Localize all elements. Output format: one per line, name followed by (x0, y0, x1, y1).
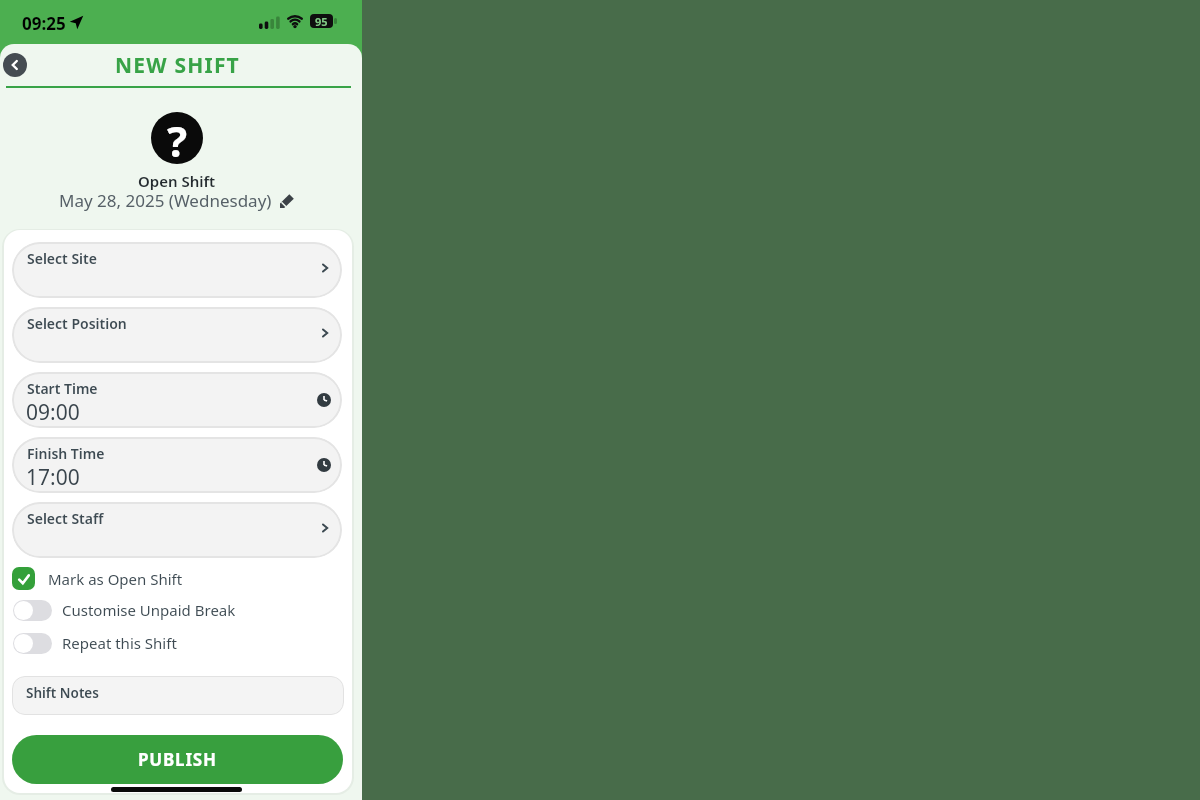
staticText: Select Staff (27, 509, 104, 528)
staticText: NEW SHIFT (115, 51, 240, 80)
staticText: Shift Notes (26, 684, 99, 702)
staticText: Mark as Open Shift (48, 569, 183, 589)
button[interactable]: Start Time (12, 372, 342, 428)
button[interactable]: PUBLISH (12, 735, 343, 784)
button[interactable]: Shift Notes (12, 676, 344, 715)
staticText: Select Position (27, 314, 127, 333)
staticText: Repeat this Shift (62, 633, 177, 653)
button[interactable]: Select Staff (12, 502, 342, 558)
staticText: ? (167, 112, 188, 164)
staticText: 17:00 (26, 463, 80, 492)
staticText: PUBLISH (138, 748, 217, 771)
staticText: 95 (315, 14, 328, 28)
staticText: Select Site (27, 249, 97, 268)
button[interactable]: Select Position (12, 307, 342, 363)
staticText: Customise Unpaid Break (62, 600, 236, 620)
button[interactable] (13, 600, 52, 621)
staticText: Open Shift (138, 171, 216, 191)
button[interactable]: Finish Time (12, 437, 342, 493)
button[interactable]: May 28, 2025 (Wednesday) (0, 189, 354, 212)
staticText: 09:00 (26, 398, 80, 427)
staticText: 09:25 (22, 12, 66, 35)
button[interactable]: Mark as Open Shift (12, 567, 183, 590)
staticText: Finish Time (27, 444, 105, 463)
button[interactable] (3, 53, 27, 77)
button[interactable]: Select Site (12, 242, 342, 298)
staticText: Start Time (27, 379, 98, 398)
button[interactable] (13, 633, 52, 654)
staticText: May 28, 2025 (Wednesday) (59, 189, 272, 212)
